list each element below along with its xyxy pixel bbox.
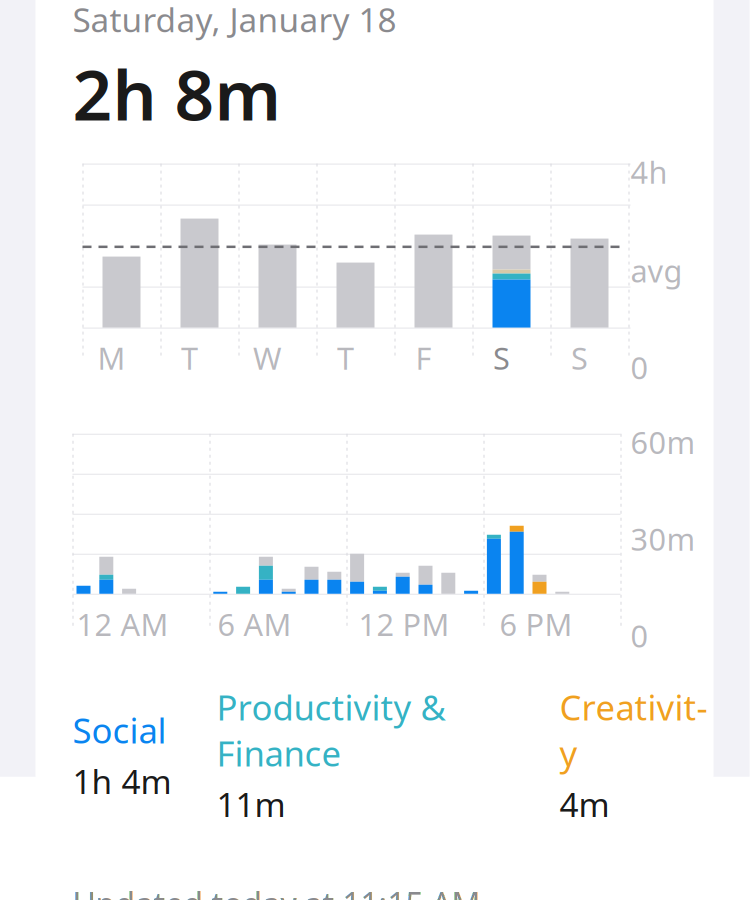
staticText: 30m <box>630 518 695 559</box>
staticText: 0 <box>630 347 648 388</box>
staticText: S <box>493 338 510 378</box>
staticText: 6 PM <box>499 604 572 644</box>
staticText: Social <box>72 707 166 753</box>
staticText: Saturday, January 18 <box>72 0 396 41</box>
staticText: 4h <box>630 152 667 192</box>
staticText: 0 <box>630 615 648 656</box>
staticText: W <box>253 338 282 378</box>
staticText: 60m <box>630 422 695 462</box>
staticText: Updated today at 11:15 AM <box>72 882 480 900</box>
staticText: 1h 4m <box>72 759 171 803</box>
staticText: T <box>181 338 198 378</box>
staticText: 12 AM <box>76 604 168 644</box>
staticText: 4m <box>559 782 609 826</box>
staticText: T <box>337 338 354 378</box>
staticText: Productivity & Finance <box>216 684 445 776</box>
staticText: 6 AM <box>217 604 291 644</box>
staticText: M <box>97 338 125 378</box>
staticText: 12 PM <box>358 604 449 644</box>
staticText: S <box>571 338 588 378</box>
staticText: F <box>415 338 431 378</box>
staticText: 11m <box>216 782 285 826</box>
staticText: Creativity <box>559 684 707 776</box>
staticText: 2h 8m <box>72 47 281 140</box>
staticText: avg <box>630 250 682 291</box>
